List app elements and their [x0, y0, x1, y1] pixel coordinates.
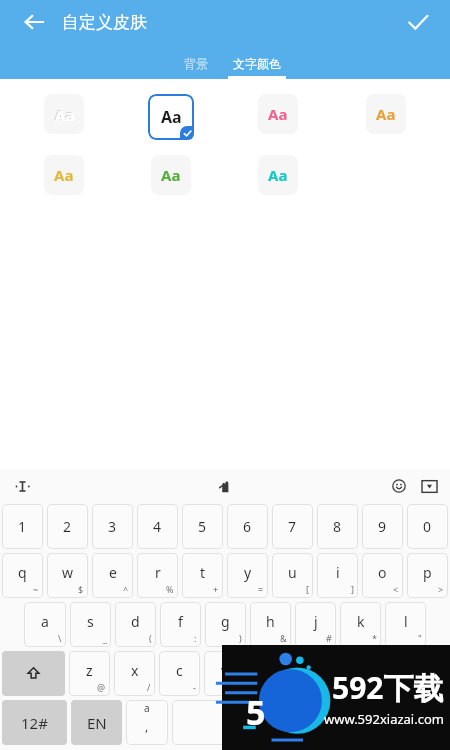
staticText: r [155, 563, 161, 582]
button[interactable]: c [159, 651, 200, 696]
button[interactable]: x [114, 651, 155, 696]
button[interactable]: o [362, 553, 403, 598]
button[interactable]: k [340, 602, 381, 647]
staticText: a [144, 701, 150, 715]
staticText: % [166, 583, 174, 595]
button[interactable]: 0 [407, 504, 448, 549]
staticText: + [213, 583, 219, 595]
staticText: Aa [55, 105, 75, 125]
staticText: 5 [198, 517, 207, 536]
button[interactable]: f [160, 602, 201, 647]
staticText: : [194, 632, 197, 644]
button[interactable]: Aa [258, 94, 298, 134]
button[interactable]: p [407, 553, 448, 598]
button[interactable]: s [70, 602, 111, 647]
staticText: ) [239, 632, 242, 644]
button[interactable]: j [295, 602, 336, 647]
staticText: @ [97, 681, 106, 693]
staticText: z [86, 661, 93, 680]
button[interactable]: Emoji [386, 473, 412, 499]
button[interactable]: Aa [151, 155, 191, 195]
button[interactable]: u [272, 553, 313, 598]
staticText: * [372, 632, 377, 644]
button[interactable]: l [385, 602, 426, 647]
button[interactable]: 文字颜色 [222, 56, 292, 79]
button[interactable]: Handwriting [211, 472, 239, 500]
button[interactable]: 2 [47, 504, 88, 549]
button[interactable]: EN [71, 700, 122, 745]
button[interactable]: Aa [366, 94, 406, 134]
staticText: ~ [33, 583, 39, 595]
button[interactable]: 7 [272, 504, 313, 549]
staticText: 2 [63, 517, 72, 536]
button[interactable]: Aa [44, 155, 84, 195]
button[interactable]: Hide keyboard [416, 473, 442, 499]
staticText: < [393, 583, 399, 595]
staticText: h [266, 612, 275, 631]
button[interactable]: . [337, 700, 379, 745]
button[interactable]: Back [12, 0, 56, 44]
other: Delete [384, 651, 448, 696]
staticText: EN [87, 713, 107, 733]
staticText: & [280, 632, 287, 644]
button[interactable]: d [115, 602, 156, 647]
button[interactable]: h [250, 602, 291, 647]
button[interactable]: 9 [362, 504, 403, 549]
staticText: a [41, 612, 49, 631]
button[interactable]: 1 [2, 504, 43, 549]
staticText: $ [78, 583, 84, 595]
button[interactable]: 4 [137, 504, 178, 549]
button[interactable]: w [47, 553, 88, 598]
staticText: = [258, 583, 264, 595]
staticText: 6 [243, 517, 252, 536]
staticText: g [221, 612, 230, 631]
staticText: Aa [268, 165, 288, 185]
staticText: ! [238, 681, 241, 693]
staticText: \ [58, 632, 62, 644]
button[interactable]: q [2, 553, 43, 598]
button[interactable] [172, 700, 333, 745]
button[interactable]: r [137, 553, 178, 598]
button[interactable]: b [249, 651, 290, 696]
button[interactable]: Enter [383, 700, 448, 745]
button[interactable]: Shift [2, 651, 65, 696]
button[interactable]: Confirm [396, 0, 440, 44]
button[interactable]: a [24, 602, 66, 647]
button[interactable]: y [227, 553, 268, 598]
button[interactable]: Aa [258, 155, 298, 195]
button[interactable]: z [69, 651, 110, 696]
button[interactable]: Aa [148, 94, 194, 140]
staticText: ; [328, 681, 331, 693]
staticText: Aa [161, 165, 181, 185]
staticText: w [62, 563, 74, 582]
button[interactable]: 5 [182, 504, 223, 549]
other: Shift [2, 651, 65, 696]
staticText: 7 [288, 517, 297, 536]
staticText: s [87, 612, 94, 631]
button[interactable]: Delete [384, 651, 448, 696]
staticText: q [18, 563, 27, 582]
button[interactable]: i [317, 553, 358, 598]
button[interactable]: 12# [2, 700, 67, 745]
button[interactable]: m [339, 651, 380, 696]
button[interactable]: n [294, 651, 335, 696]
button[interactable]: 6 [227, 504, 268, 549]
staticText: e [109, 563, 117, 582]
button[interactable]: g [205, 602, 246, 647]
button[interactable]: e [92, 553, 133, 598]
staticText: 自定义皮肤 [62, 12, 147, 33]
button[interactable]: a [126, 700, 168, 745]
button[interactable]: 3 [92, 504, 133, 549]
button[interactable]: 8 [317, 504, 358, 549]
staticText: 4 [153, 517, 162, 536]
button[interactable]: Cursor [8, 472, 36, 500]
button[interactable]: t [182, 553, 223, 598]
staticText: ' [373, 681, 376, 693]
button[interactable]: 背景 [178, 56, 214, 79]
staticText: ^ [123, 583, 129, 595]
staticText: 12# [21, 713, 48, 733]
staticText: l [404, 612, 408, 631]
button[interactable]: Aa [44, 94, 84, 134]
button[interactable]: v [204, 651, 245, 696]
